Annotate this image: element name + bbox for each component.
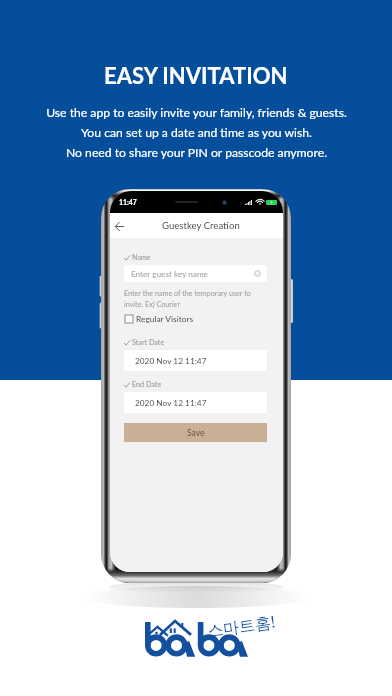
button[interactable]: Save xyxy=(124,423,267,442)
staticText: Enter the name of the temporary user to … xyxy=(124,289,251,309)
button[interactable]: Enter guest key name xyxy=(124,265,267,282)
button[interactable]: Back xyxy=(110,217,128,235)
staticText: Save xyxy=(187,428,205,438)
staticText: Start Date xyxy=(132,338,165,347)
staticText: End Date xyxy=(132,380,162,389)
staticText: Regular Visitors xyxy=(136,314,194,324)
button[interactable]: Regular Visitors xyxy=(125,314,194,324)
staticText: 2020 Nov 12 11:47 xyxy=(135,356,207,366)
staticText: Enter guest key name xyxy=(131,269,208,279)
staticText: 11:47 xyxy=(119,198,137,206)
staticText: Guestkey Creation xyxy=(162,220,240,232)
staticText: EASY INVITATION xyxy=(104,62,288,88)
staticText: Name xyxy=(132,253,151,262)
staticText: Use the app to easily invite your family… xyxy=(46,105,347,160)
staticText: 2020 Nov 12 11:47 xyxy=(135,398,207,408)
button[interactable]: 2020 Nov 12 11:47 xyxy=(124,392,267,413)
staticText: 스마트홈! xyxy=(206,610,277,642)
button[interactable]: 2020 Nov 12 11:47 xyxy=(124,350,267,371)
